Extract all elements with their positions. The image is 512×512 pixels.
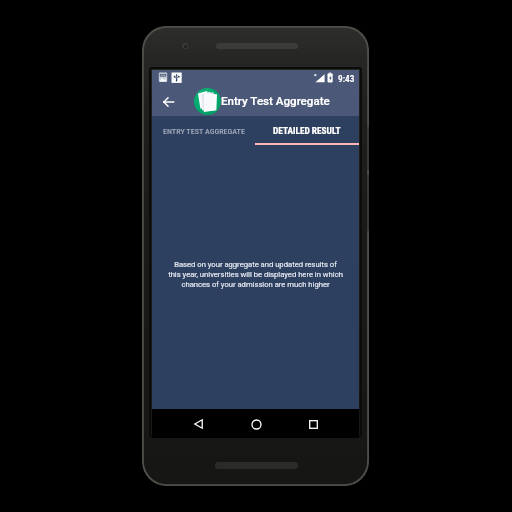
staticText: DETAILED RESULT	[273, 125, 341, 136]
button[interactable]: Home	[244, 412, 268, 436]
staticText: ENTRY TEST AGGREGATE	[163, 126, 245, 135]
button[interactable]: Back	[156, 89, 181, 114]
button[interactable]: Back	[186, 412, 210, 436]
staticText: Based on your aggregate and updated resu…	[152, 260, 359, 289]
button[interactable]: DETAILED RESULT	[255, 116, 359, 143]
button[interactable]: ENTRY TEST AGGREGATE	[152, 116, 255, 143]
staticText: 9:43	[338, 73, 355, 84]
staticText: Entry Test Aggregate	[221, 94, 330, 108]
button[interactable]: Recent apps	[301, 412, 325, 436]
